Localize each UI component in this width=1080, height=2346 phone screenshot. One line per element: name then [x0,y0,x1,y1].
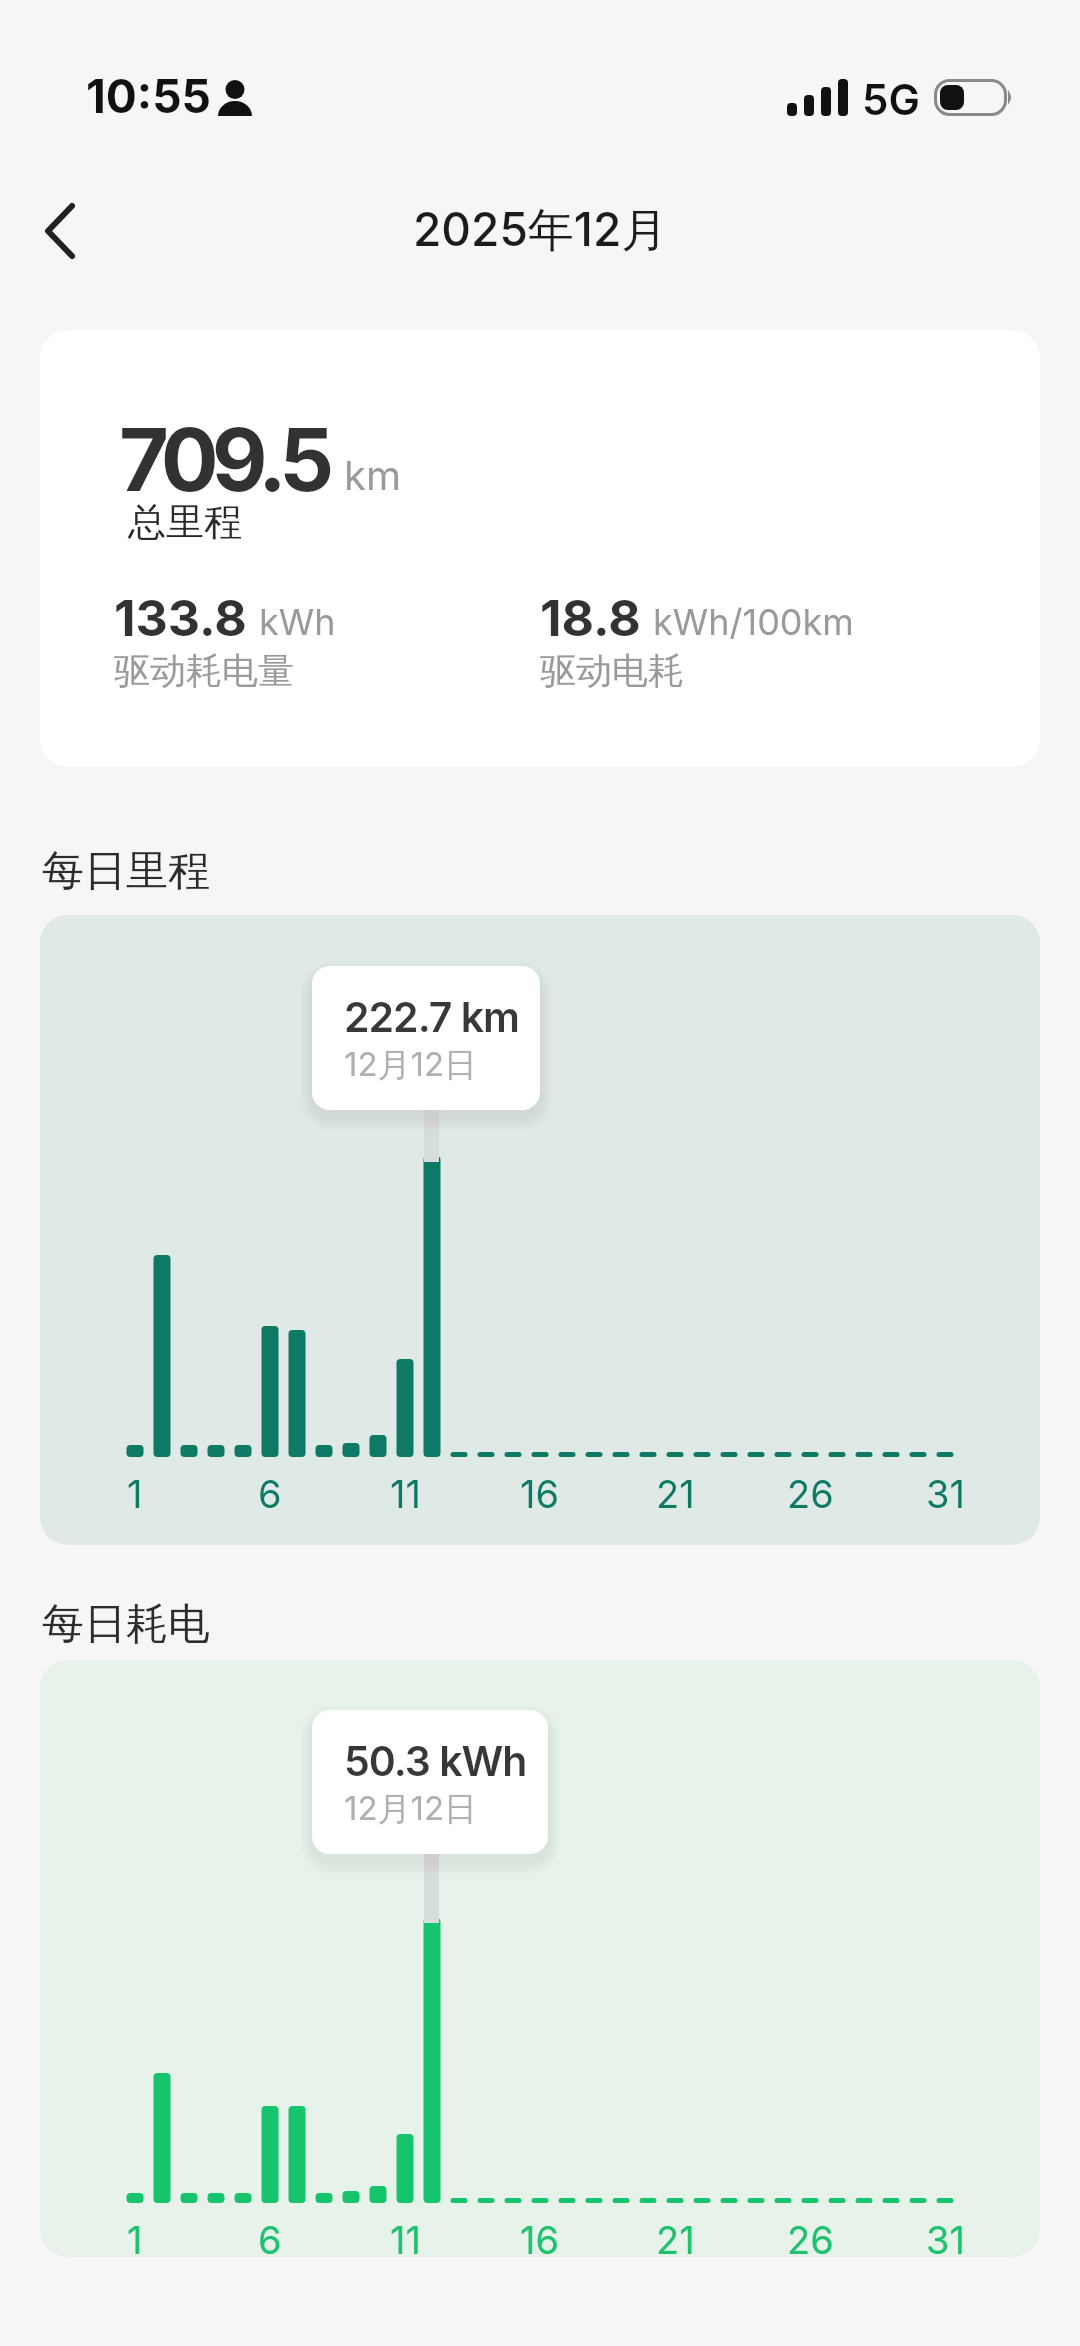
staticText: 1 [127,1471,143,1517]
staticText: 18.8 [540,588,641,648]
staticText: 6 [258,1471,282,1517]
staticText: 16 [520,1471,560,1517]
button[interactable] [30,195,90,267]
staticText: 11 [390,2217,421,2257]
staticText: 222.7 km [344,992,520,1042]
staticText: 5G [862,74,920,125]
staticText: 驱动耗电量 [114,648,294,693]
staticText: kWh/100km [653,600,854,644]
staticText: 11 [390,1471,421,1517]
button[interactable]: 709.5 [40,330,1040,767]
button[interactable]: 50.3 kWh [312,1710,548,1854]
staticText: 50.3 kWh [344,1736,527,1786]
staticText: 每日里程 [42,845,210,898]
staticText: 133.8 [114,588,247,648]
staticText: 2025年12月 [413,201,668,259]
staticText: 709.5 [119,408,328,512]
staticText: 驱动电耗 [540,648,684,693]
staticText: 21 [656,1471,695,1517]
staticText: 1 [127,2217,143,2257]
staticText: km [344,451,401,499]
staticText: 12月12日 [344,1788,478,1830]
button[interactable]: 222.7 km [312,966,540,1110]
button[interactable]: 1 [40,1660,1040,2257]
staticText: 总里程 [128,498,242,546]
button[interactable]: 1 [40,915,1040,1545]
staticText: 31 [926,1471,965,1517]
staticText: 21 [656,2217,695,2257]
staticText: 16 [520,2217,560,2257]
staticText: 26 [787,2217,834,2257]
staticText: 6 [258,2217,282,2257]
staticText: 12月12日 [344,1044,478,1086]
staticText: 26 [787,1471,834,1517]
staticText: 每日耗电 [42,1598,210,1651]
staticText: kWh [259,600,336,644]
staticText: 31 [926,2217,965,2257]
staticText: 10:55 [86,68,212,124]
